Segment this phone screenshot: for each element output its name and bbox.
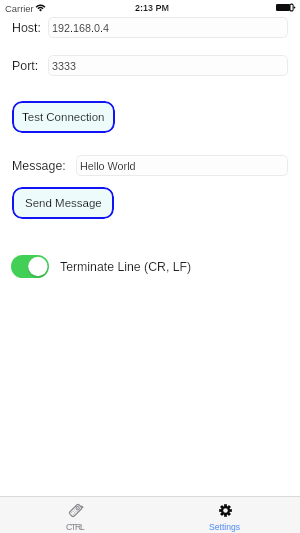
staticText: Carrier (5, 3, 34, 14)
button[interactable]: Test Connection (12, 101, 115, 133)
button[interactable]: CTRL (0, 497, 150, 533)
button[interactable]: Terminate line toggle (11, 255, 49, 278)
button[interactable]: Hello World (76, 155, 288, 176)
button[interactable]: 192.168.0.4 (48, 17, 288, 38)
staticText: Host: (12, 21, 41, 35)
staticText: Hello World (80, 160, 136, 172)
staticText: Message: (12, 159, 66, 173)
staticText: Port: (12, 59, 39, 73)
staticText: Terminate Line (CR, LF) (60, 260, 192, 274)
staticText: Settings (209, 522, 241, 532)
staticText: CTRL (66, 522, 84, 532)
button[interactable]: Send Message (12, 187, 114, 219)
staticText: 192.168.0.4 (52, 22, 110, 34)
staticText: 3333 (52, 60, 77, 72)
staticText: Test Connection (22, 111, 105, 124)
button[interactable]: 3333 (48, 55, 288, 76)
button[interactable]: Settings (150, 497, 300, 533)
staticText: Send Message (25, 197, 102, 210)
staticText: 2:13 PM (135, 3, 170, 13)
